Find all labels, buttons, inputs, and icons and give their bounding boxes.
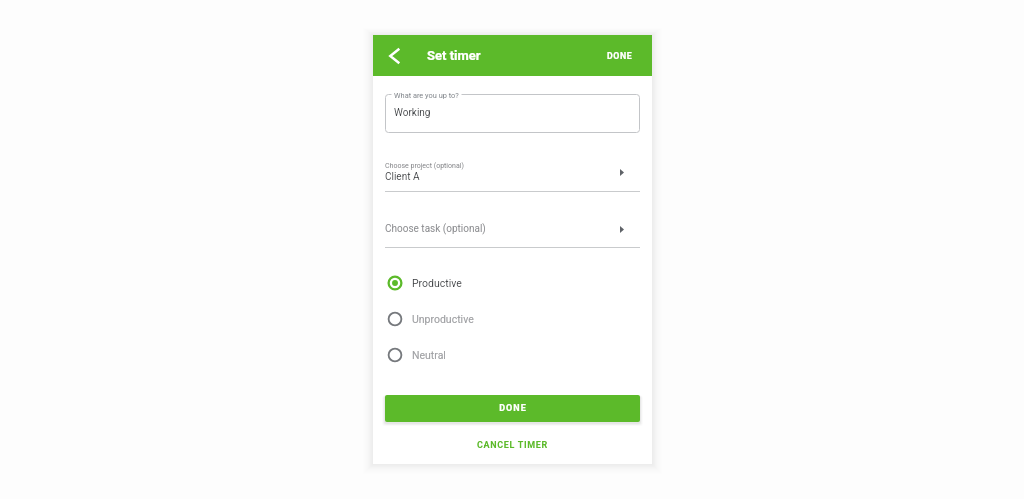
staticText: What are you up to? xyxy=(394,91,459,100)
staticText: Client A xyxy=(385,171,420,183)
button[interactable]: What are you up to? xyxy=(385,94,640,133)
button[interactable]: Neutral xyxy=(387,337,642,372)
button[interactable]: Productive xyxy=(387,265,642,300)
button[interactable]: DONE xyxy=(588,41,652,71)
staticText: DONE xyxy=(607,51,633,61)
staticText: Unproductive xyxy=(412,313,474,325)
staticText: Set timer xyxy=(427,48,481,63)
staticText: Productive xyxy=(412,277,462,289)
button[interactable]: Back xyxy=(381,42,409,70)
button[interactable]: Choose task (optional) xyxy=(385,222,640,251)
button[interactable]: Unproductive xyxy=(387,301,642,336)
staticText: Choose task (optional) xyxy=(385,223,486,235)
staticText: CANCEL TIMER xyxy=(477,440,548,451)
button[interactable]: Choose project (optional) xyxy=(385,162,640,195)
staticText: Choose project (optional) xyxy=(385,162,464,170)
button[interactable]: CANCEL TIMER xyxy=(461,435,564,456)
staticText: Working xyxy=(394,107,431,119)
staticText: DONE xyxy=(499,403,527,414)
staticText: Neutral xyxy=(412,349,446,361)
button[interactable]: DONE xyxy=(385,395,640,422)
